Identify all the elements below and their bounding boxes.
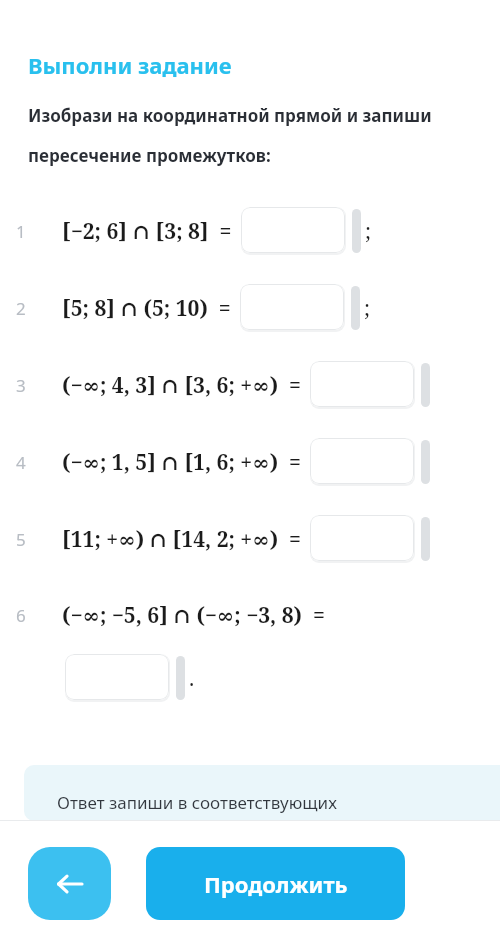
staticText: 1 — [16, 220, 26, 243]
button[interactable]: Продолжить — [146, 847, 405, 920]
staticText: ; — [365, 217, 372, 246]
staticText: 2 — [16, 297, 26, 320]
button[interactable] — [310, 361, 414, 407]
staticText: Выполни задание — [28, 50, 232, 80]
button[interactable] — [310, 438, 414, 484]
staticText: [5; 8] ∩ (5; 10) = — [62, 294, 231, 323]
button[interactable] — [241, 207, 345, 253]
staticText: 5 — [16, 528, 26, 551]
button[interactable] — [240, 284, 344, 330]
staticText: Ответ запиши в соответствующих — [57, 791, 337, 814]
staticText: (−∞; 1, 5] ∩ [1, 6; +∞) = — [62, 448, 301, 477]
staticText: Изобрази на координатной прямой и запиши — [28, 104, 500, 127]
staticText: 3 — [16, 374, 26, 397]
button[interactable] — [310, 515, 414, 561]
staticText: (−∞; 4, 3] ∩ [3, 6; +∞) = — [62, 371, 301, 400]
button[interactable]: Назад — [28, 847, 111, 920]
staticText: (−∞; −5, 6] ∩ (−∞; −3, 8) = — [62, 601, 325, 630]
button[interactable] — [65, 654, 169, 700]
staticText: [11; +∞) ∩ [14, 2; +∞) = — [62, 525, 301, 554]
staticText: Продолжить — [204, 869, 348, 899]
staticText: [−2; 6] ∩ [3; 8] = — [62, 217, 232, 246]
staticText: 6 — [16, 604, 26, 627]
staticText: пересечение промежутков: — [28, 144, 271, 167]
staticText: 4 — [16, 451, 26, 474]
staticText: . — [189, 664, 195, 693]
staticText: ; — [364, 294, 371, 323]
